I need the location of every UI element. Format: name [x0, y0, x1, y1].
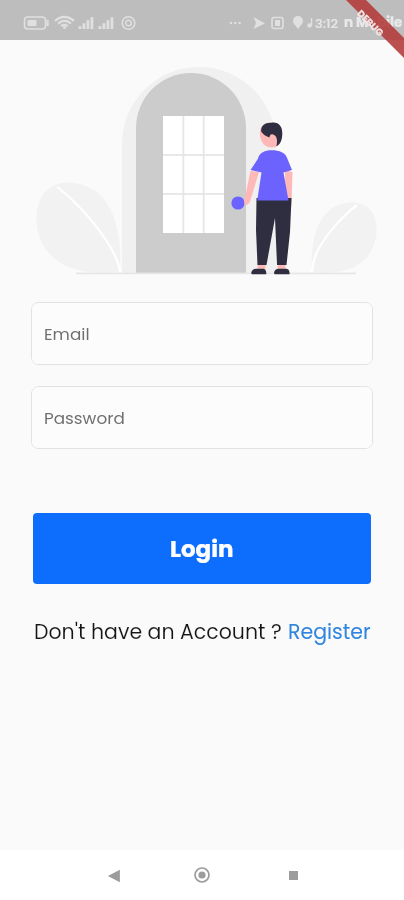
button[interactable]: Login [33, 513, 371, 584]
staticText: Register [288, 617, 371, 646]
button[interactable]: Recents [271, 853, 315, 897]
staticText: Password [44, 406, 125, 430]
staticText: n Mobile [344, 13, 403, 32]
button[interactable]: Password [31, 386, 373, 449]
staticText: DEBUG [354, 7, 387, 39]
button[interactable]: Register [288, 617, 371, 646]
staticText: 3:12 [315, 14, 338, 32]
button[interactable]: Home [180, 853, 224, 897]
staticText: Don't have an Account ? [34, 617, 288, 646]
staticText: Email [44, 322, 90, 346]
staticText: Login [170, 533, 234, 565]
button[interactable]: Email [31, 302, 373, 365]
button[interactable]: Back [92, 854, 136, 898]
